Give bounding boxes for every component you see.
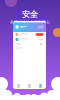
staticText: 多重保护让上网更安心 [10,20,50,25]
button[interactable]: Home [13,83,24,89]
button[interactable]: Open [39,38,43,41]
staticText: 安全 [22,9,38,19]
button[interactable]: Action [35,33,43,36]
button[interactable]: Discover [24,83,35,89]
button[interactable]: Profile [35,83,46,89]
